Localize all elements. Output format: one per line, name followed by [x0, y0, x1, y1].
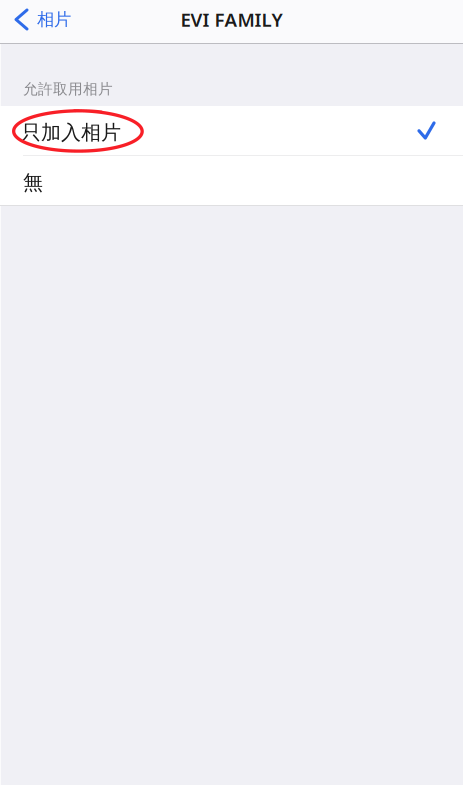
- staticText: 相片: [37, 9, 71, 30]
- button[interactable]: 無: [0, 156, 463, 205]
- button[interactable]: 只加入相片: [0, 106, 463, 155]
- staticText: 允許取用相片: [23, 80, 113, 98]
- staticText: 只加入相片: [21, 120, 121, 145]
- button[interactable]: 相片: [0, 0, 83, 44]
- staticText: EVI FAMILY: [180, 7, 282, 32]
- staticText: 無: [23, 170, 43, 195]
